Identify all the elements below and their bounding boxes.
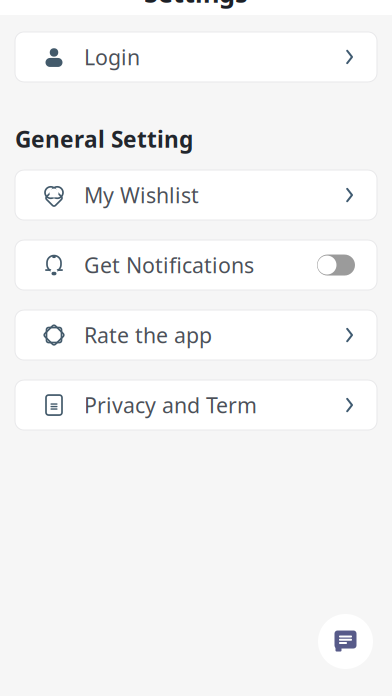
button[interactable]: Privacy and Term [0, 380, 392, 430]
staticText: Settings [144, 0, 248, 10]
button[interactable]: Chat support [318, 614, 373, 669]
staticText: Get Notifications [84, 251, 254, 279]
staticText: My Wishlist [84, 181, 199, 209]
staticText: Rate the app [84, 321, 212, 349]
button[interactable]: Get Notifications [0, 240, 392, 290]
button[interactable]: Rate the app [0, 310, 392, 360]
staticText: Login [84, 43, 140, 71]
staticText: General Setting [15, 124, 193, 154]
staticText: Privacy and Term [84, 391, 257, 419]
button[interactable]: Login [0, 32, 392, 82]
button[interactable]: My Wishlist [0, 170, 392, 220]
